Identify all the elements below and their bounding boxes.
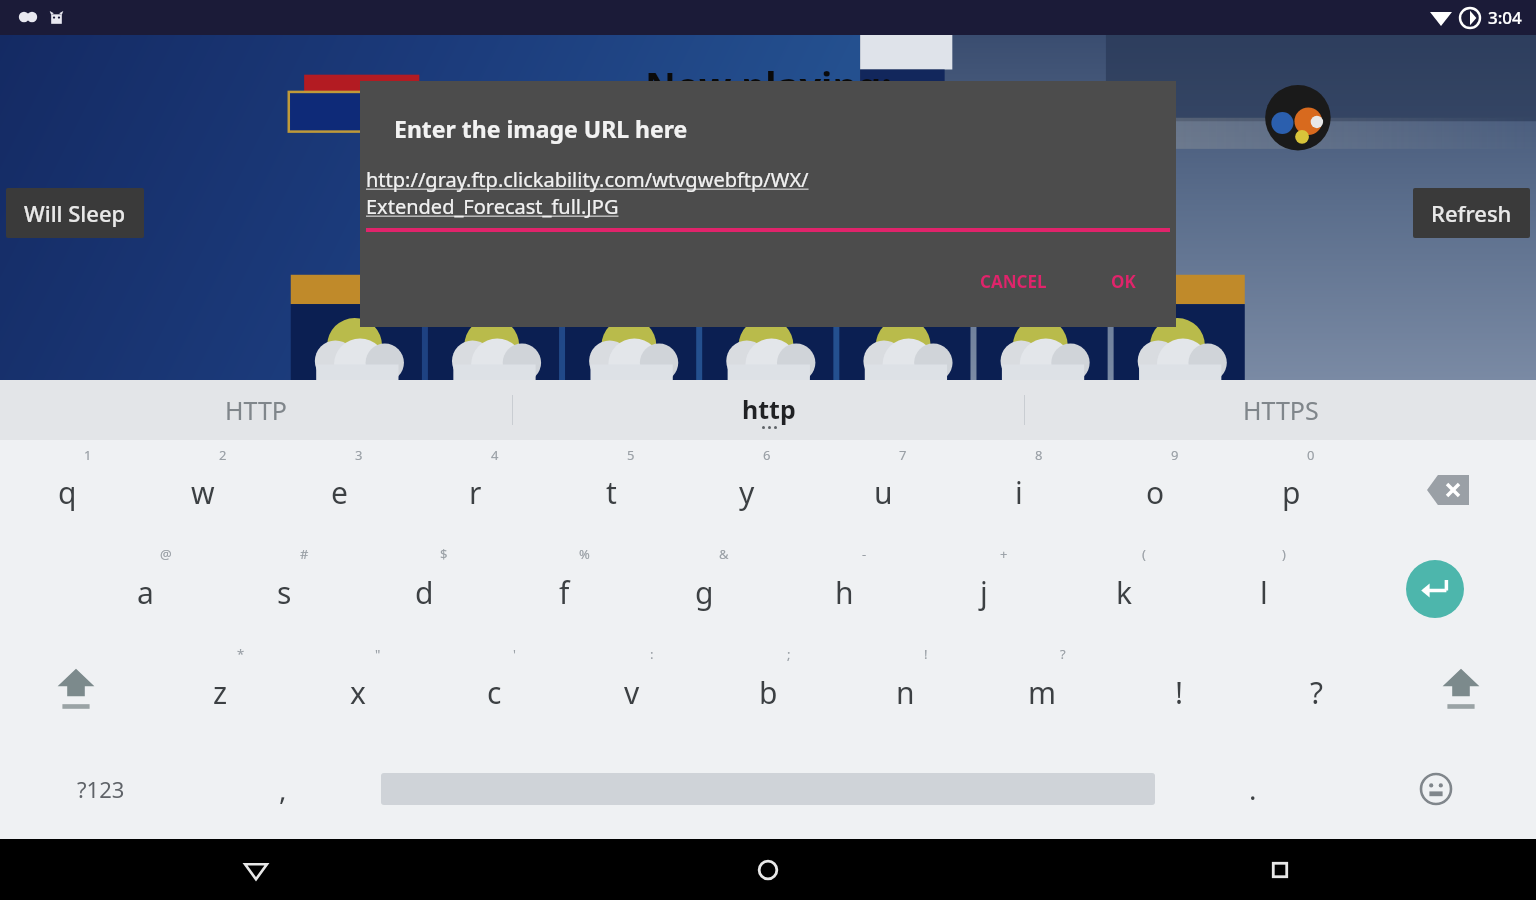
staticText: ? bbox=[1310, 672, 1324, 713]
staticText: g bbox=[695, 572, 714, 613]
button[interactable]: Home bbox=[512, 839, 1024, 900]
button[interactable]: OK bbox=[1095, 262, 1152, 301]
staticText: u bbox=[874, 472, 893, 513]
button[interactable]: i bbox=[951, 440, 1087, 539]
staticText: ; bbox=[787, 645, 791, 663]
button[interactable]: CANCEL bbox=[964, 262, 1063, 301]
button[interactable]: c bbox=[426, 639, 563, 739]
staticText: h bbox=[835, 572, 854, 613]
staticText: @ bbox=[160, 545, 172, 563]
staticText: y bbox=[739, 472, 755, 513]
staticText: ? bbox=[1060, 645, 1066, 663]
button[interactable]: f bbox=[494, 539, 634, 639]
button[interactable]: d bbox=[354, 539, 494, 639]
staticText: OK bbox=[1111, 270, 1136, 293]
staticText: r bbox=[469, 472, 482, 513]
staticText: , bbox=[279, 770, 287, 808]
staticText: w bbox=[191, 472, 215, 513]
button[interactable]: g bbox=[634, 539, 774, 639]
button[interactable]: m bbox=[974, 639, 1111, 739]
staticText: l bbox=[1260, 572, 1268, 613]
staticText: . bbox=[1249, 770, 1257, 808]
button[interactable]: HTTPS bbox=[1025, 380, 1536, 440]
staticText: x bbox=[350, 672, 366, 713]
staticText: HTTP bbox=[225, 393, 287, 427]
button[interactable]: Enter bbox=[1334, 539, 1536, 639]
button[interactable]: h bbox=[774, 539, 914, 639]
staticText: Now playing: bbox=[645, 59, 892, 111]
staticText: ! bbox=[924, 645, 928, 663]
staticText: 5 bbox=[627, 446, 635, 464]
staticText: % bbox=[579, 545, 590, 563]
staticText: c bbox=[487, 672, 502, 713]
button[interactable]: e bbox=[271, 440, 407, 539]
button[interactable]: Back bbox=[0, 839, 512, 900]
button[interactable]: http bbox=[513, 380, 1024, 440]
staticText: a bbox=[137, 572, 154, 613]
staticText: ) bbox=[1282, 545, 1286, 563]
button[interactable]: q bbox=[0, 440, 135, 539]
button[interactable]: Shift bbox=[0, 639, 152, 739]
staticText: 3 bbox=[355, 446, 363, 464]
staticText: ! bbox=[1175, 672, 1184, 713]
button[interactable]: HTTP bbox=[0, 380, 512, 440]
staticText: o bbox=[1146, 472, 1165, 513]
button[interactable]: s bbox=[215, 539, 354, 639]
staticText: # bbox=[300, 545, 309, 563]
button[interactable]: z bbox=[152, 639, 289, 739]
staticText: Enter the image URL here bbox=[394, 113, 688, 144]
button[interactable]: p bbox=[1223, 440, 1359, 539]
button[interactable]: ! bbox=[1111, 639, 1248, 739]
staticText: * bbox=[237, 645, 245, 663]
staticText: k bbox=[1116, 572, 1133, 613]
button[interactable]: ? bbox=[1248, 639, 1385, 739]
staticText: 3:04 bbox=[1488, 6, 1522, 29]
button[interactable]: o bbox=[1087, 440, 1223, 539]
button[interactable]: k bbox=[1054, 539, 1194, 639]
staticText: 9 bbox=[1171, 446, 1179, 464]
staticText: CANCEL bbox=[980, 270, 1047, 293]
button[interactable]: Recents bbox=[1024, 839, 1536, 900]
button[interactable]: x bbox=[289, 639, 426, 739]
button[interactable]: r bbox=[407, 440, 543, 539]
staticText: ?123 bbox=[77, 774, 125, 804]
staticText: i bbox=[1015, 472, 1023, 513]
staticText: d bbox=[415, 572, 434, 613]
button[interactable]: l bbox=[1194, 539, 1334, 639]
button[interactable]: Refresh bbox=[1413, 188, 1530, 238]
staticText: ' bbox=[513, 645, 516, 663]
button[interactable]: j bbox=[914, 539, 1054, 639]
button[interactable]: n bbox=[837, 639, 974, 739]
button[interactable]: ?123 bbox=[0, 739, 201, 839]
button[interactable]: Emoji bbox=[1335, 739, 1536, 839]
staticText: s bbox=[277, 572, 292, 613]
staticText: 8 bbox=[1035, 446, 1043, 464]
button[interactable]: a bbox=[76, 539, 215, 639]
staticText: Refresh bbox=[1431, 198, 1512, 228]
button[interactable]: Space bbox=[365, 739, 1171, 839]
button[interactable]: y bbox=[679, 440, 815, 539]
button[interactable]: v bbox=[563, 639, 700, 739]
staticText: $ bbox=[440, 545, 448, 563]
staticText: v bbox=[624, 672, 640, 713]
staticText: z bbox=[213, 672, 228, 713]
staticText: + bbox=[1000, 545, 1008, 563]
staticText: Will Sleep bbox=[24, 198, 126, 228]
staticText: 6 bbox=[763, 446, 771, 464]
button[interactable]: t bbox=[543, 440, 679, 539]
button[interactable]: u bbox=[815, 440, 951, 539]
button[interactable]: Backspace bbox=[1359, 440, 1536, 539]
staticText: m bbox=[1028, 672, 1057, 713]
button[interactable]: Will Sleep bbox=[6, 188, 144, 238]
button[interactable]: w bbox=[135, 440, 271, 539]
staticText: http://gray.ftp.clickability.com/wtvgweb… bbox=[366, 166, 809, 193]
button[interactable]: Shift bbox=[1385, 639, 1536, 739]
button[interactable]: b bbox=[700, 639, 837, 739]
staticText: f bbox=[559, 572, 570, 613]
button[interactable]: . bbox=[1171, 739, 1335, 839]
button[interactable]: , bbox=[201, 739, 365, 839]
staticText: 7 bbox=[899, 446, 907, 464]
staticText: http bbox=[742, 392, 796, 426]
staticText: b bbox=[759, 672, 778, 713]
staticText: p bbox=[1282, 472, 1301, 513]
